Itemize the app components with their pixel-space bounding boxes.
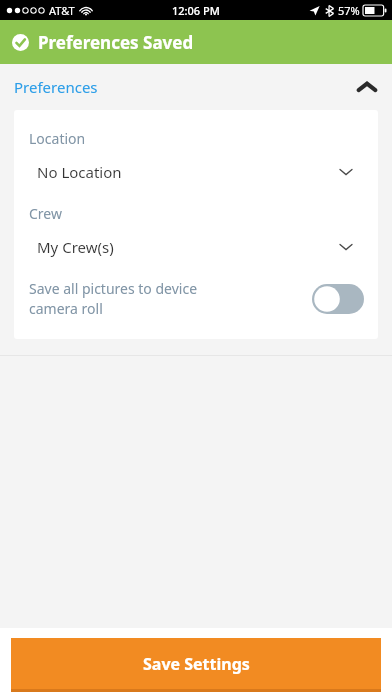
staticText: Preferences Saved [38, 31, 194, 54]
staticText: Save all pictures to device camera roll [29, 279, 229, 318]
button[interactable]: Save Settings [11, 638, 381, 692]
staticText: Preferences [14, 77, 98, 97]
staticText: 12:06 PM [172, 3, 220, 18]
staticText: AT&T [49, 3, 75, 18]
staticText: 57% [338, 3, 360, 18]
staticText: Location [29, 129, 86, 148]
button[interactable]: Preferences [0, 64, 392, 110]
staticText: Crew [29, 204, 62, 223]
other: Collapse Preferences [356, 80, 378, 94]
other: Save all pictures toggle [312, 284, 364, 314]
button[interactable]: Save all pictures to device camera roll [14, 275, 378, 322]
staticText: My Crew(s) [37, 237, 114, 257]
staticText: No Location [37, 162, 122, 182]
button[interactable]: No Location [14, 160, 378, 184]
button[interactable]: My Crew(s) [14, 235, 378, 259]
staticText: Save Settings [143, 653, 250, 675]
